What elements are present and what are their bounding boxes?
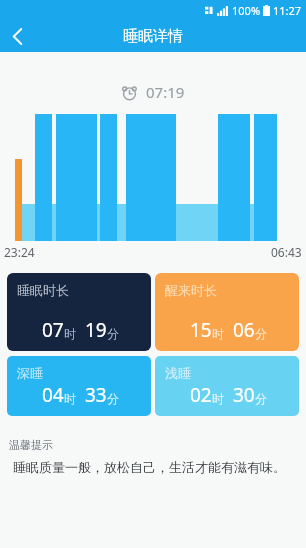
staticText: 深睡	[17, 365, 43, 381]
staticText: 分	[255, 391, 267, 406]
staticText: 时	[64, 391, 76, 406]
staticText: 06:43	[271, 244, 302, 260]
staticText: 睡眠详情	[123, 27, 183, 46]
staticText: 睡眠质量一般，放松自己，生活才能有滋有味。	[13, 459, 286, 475]
staticText: 15	[190, 317, 212, 343]
staticText: 30	[233, 382, 255, 408]
button[interactable]: 醒来时长	[155, 273, 299, 351]
staticText: 时	[212, 326, 224, 341]
staticText: 19	[85, 317, 107, 343]
staticText: 07:19	[146, 82, 185, 102]
button[interactable]: 睡眠时长	[7, 273, 151, 351]
staticText: 分	[107, 326, 119, 341]
button[interactable]: 浅睡	[155, 356, 299, 416]
staticText: 分	[255, 326, 267, 341]
staticText: 时	[212, 391, 224, 406]
staticText: 浅睡	[165, 365, 191, 381]
staticText: 温馨提示	[9, 438, 53, 452]
staticText: 醒来时长	[165, 282, 217, 298]
staticText: 23:24	[4, 244, 35, 260]
button[interactable]: 深睡	[7, 356, 151, 416]
staticText: 06	[233, 317, 255, 343]
staticText: 11:27	[273, 3, 302, 18]
staticText: 分	[107, 391, 119, 406]
staticText: 02	[190, 382, 212, 408]
staticText: 33	[85, 382, 107, 408]
staticText: 时	[64, 326, 76, 341]
staticText: 07	[42, 317, 64, 343]
button[interactable]: Back	[0, 20, 34, 52]
staticText: 04	[42, 382, 64, 408]
staticText: 100%	[232, 3, 261, 18]
staticText: 睡眠时长	[17, 282, 69, 298]
